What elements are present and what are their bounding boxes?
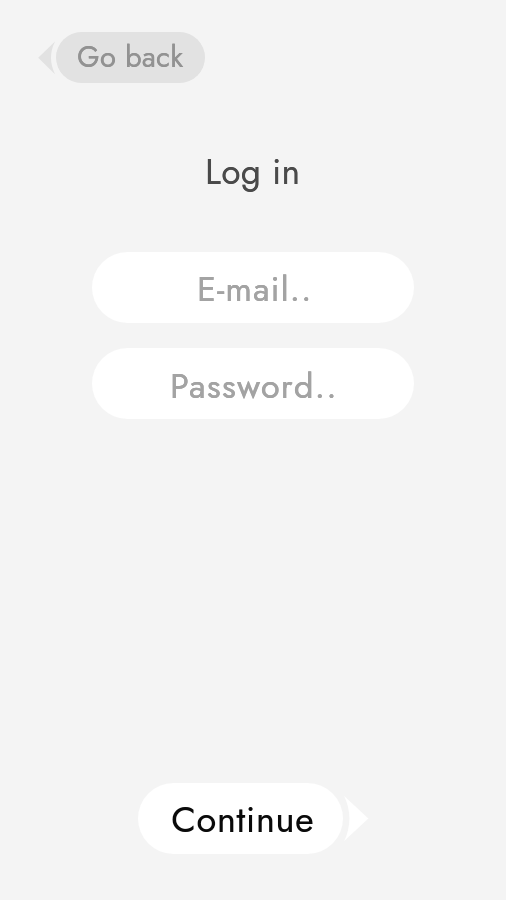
button[interactable]: Password.. (92, 348, 414, 419)
staticText: Continue (171, 793, 315, 845)
staticText: Password.. (170, 362, 338, 411)
staticText: E-mail.. (197, 265, 313, 314)
staticText: E-mail.. (197, 265, 313, 314)
button[interactable]: Go back (36, 30, 208, 86)
staticText: Continue (171, 793, 315, 845)
staticText: Password.. (170, 362, 338, 411)
button[interactable]: Continue (138, 783, 370, 854)
staticText: Log in (205, 147, 301, 198)
staticText: Log in (205, 147, 301, 198)
button[interactable]: E-mail.. (92, 252, 414, 323)
staticText: Go back (77, 36, 184, 78)
staticText: Go back (77, 36, 184, 78)
